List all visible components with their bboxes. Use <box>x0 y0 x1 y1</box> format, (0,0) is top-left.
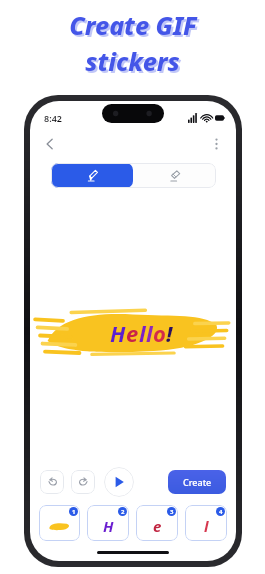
staticText: o <box>153 318 166 348</box>
staticText: e <box>126 318 139 348</box>
staticText: Create GIF <box>71 10 199 44</box>
button[interactable]: Eraser tool <box>133 163 216 188</box>
staticText: l <box>204 516 209 536</box>
button[interactable]: Create <box>168 470 226 494</box>
button[interactable]: Play <box>104 467 134 497</box>
button[interactable]: Frame 1 <box>39 505 80 541</box>
button[interactable]: Frame 2 <box>87 505 129 541</box>
button[interactable]: Back <box>38 132 62 156</box>
staticText: 4 <box>219 508 223 516</box>
staticText: l <box>139 318 146 348</box>
button[interactable]: More options <box>205 133 227 155</box>
staticText: stickers <box>85 44 180 78</box>
button[interactable]: Pen tool <box>51 163 133 188</box>
staticText: 2 <box>121 508 125 516</box>
button[interactable]: Frame 4 <box>185 505 227 541</box>
staticText: H <box>110 318 126 348</box>
staticText: 8:42 <box>44 112 62 124</box>
staticText: H <box>103 516 114 536</box>
button[interactable]: Undo <box>40 470 64 494</box>
staticText: 3 <box>170 508 174 516</box>
staticText: Create <box>183 476 212 488</box>
staticText: l <box>146 318 153 348</box>
staticText: Create GIF <box>69 8 197 42</box>
button[interactable]: Redo <box>71 470 95 494</box>
staticText: e <box>153 516 162 536</box>
button[interactable]: Frame 3 <box>136 505 178 541</box>
staticText: 1 <box>72 508 76 516</box>
staticText: ! <box>166 318 173 348</box>
staticText: stickers <box>87 46 182 80</box>
